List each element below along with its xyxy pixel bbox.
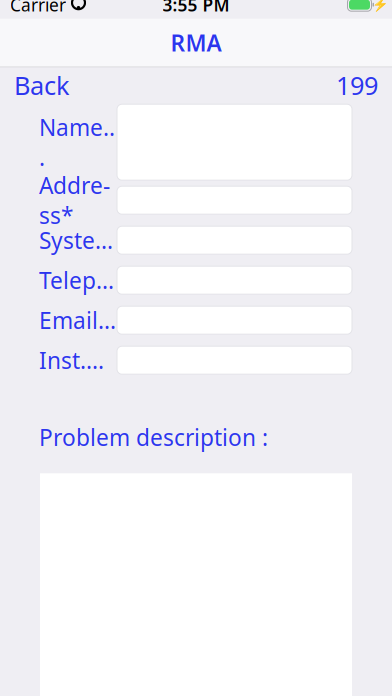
staticText: Inst.... — [39, 345, 104, 375]
button[interactable] — [117, 346, 352, 374]
staticText: Carrier — [10, 0, 66, 16]
staticText: RMA — [170, 28, 221, 58]
staticText: Email... — [39, 305, 116, 335]
button[interactable] — [117, 226, 352, 254]
staticText: Problem description : — [39, 422, 268, 452]
staticText: Address* — [39, 170, 110, 230]
button[interactable]: Back — [0, 62, 84, 108]
staticText: ⚡ — [371, 0, 388, 12]
staticText: Back — [14, 68, 70, 102]
staticText: 199 — [336, 68, 378, 102]
button[interactable]: 199 — [322, 62, 392, 108]
button[interactable] — [117, 266, 352, 294]
staticText: Name... — [39, 112, 115, 172]
button[interactable] — [117, 306, 352, 334]
staticText: 3:55 PM — [162, 0, 229, 16]
button[interactable] — [117, 186, 352, 214]
staticText: Syste... — [39, 225, 113, 255]
staticText: Telep... — [39, 265, 114, 295]
